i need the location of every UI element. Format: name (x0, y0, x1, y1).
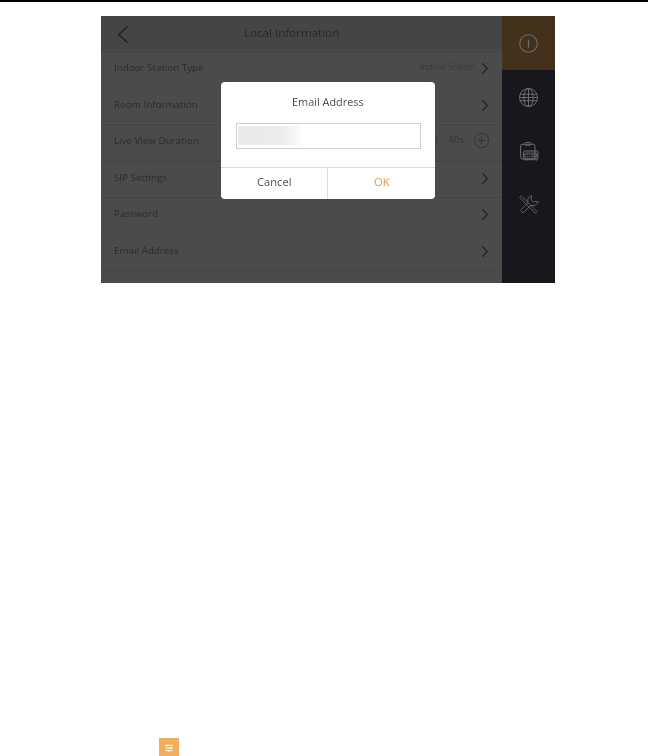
staticText: Password (114, 207, 159, 220)
staticText: Room Information (114, 98, 198, 111)
button[interactable]: Maintenance (502, 178, 555, 232)
button[interactable]: Room Information (101, 88, 502, 125)
staticText: SIP Settings (114, 171, 167, 184)
button[interactable]: Settings (159, 738, 179, 756)
staticText: Local Information (244, 25, 340, 41)
staticText: Cancel (257, 174, 292, 189)
button[interactable]: Information (502, 16, 555, 70)
button[interactable]: OK (328, 168, 435, 199)
button[interactable]: Email Address (101, 234, 502, 271)
staticText: Indoor Station Type (114, 61, 204, 74)
staticText: Email Address (292, 94, 364, 109)
button[interactable]: Cancel (221, 168, 327, 199)
staticText: Indoor Station (420, 61, 476, 72)
staticText: Email Address (114, 244, 179, 257)
staticText: OK (374, 174, 390, 189)
button[interactable]: Password (101, 197, 502, 234)
button[interactable]: Indoor Station Type (101, 51, 502, 88)
button[interactable]: Live View Duration (101, 124, 502, 161)
button[interactable]: Increase (473, 132, 489, 148)
button[interactable]: Device management (502, 124, 555, 178)
button[interactable]: Decrease (422, 132, 438, 148)
staticText: Live View Duration (114, 134, 199, 147)
button[interactable]: SIP Settings (101, 161, 502, 198)
staticText: 60s (449, 133, 464, 146)
button[interactable]: Back (109, 20, 137, 48)
button[interactable]: Network (502, 70, 555, 124)
